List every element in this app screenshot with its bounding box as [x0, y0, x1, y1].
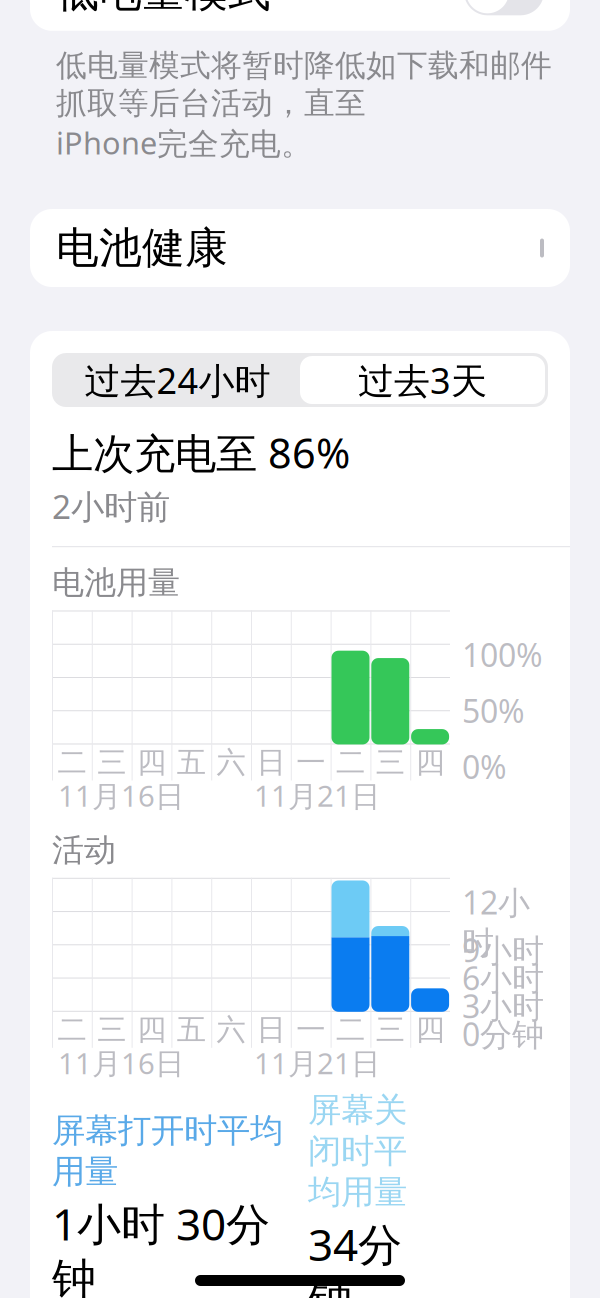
- staticText: 过去3天: [358, 356, 487, 404]
- staticText: 上次充电至 86%: [52, 425, 350, 480]
- staticText: 三: [97, 744, 126, 780]
- button[interactable]: 低电量模式: [30, 0, 570, 31]
- staticText: 四: [137, 1012, 166, 1048]
- staticText: 50%: [462, 689, 525, 732]
- staticText: 一: [296, 1012, 325, 1048]
- staticText: 电池健康: [56, 222, 228, 274]
- staticText: 四: [416, 1012, 445, 1048]
- staticText: 四: [416, 744, 445, 780]
- staticText: 11月21日: [254, 776, 380, 815]
- staticText: 100%: [462, 633, 543, 676]
- staticText: 11月16日: [58, 1043, 184, 1082]
- staticText: 三: [376, 744, 405, 780]
- staticText: 低电量模式将暂时降低如下载和邮件抓取等后台活动，直至 iPhone完全充电。: [56, 47, 552, 163]
- staticText: 过去24小时: [84, 356, 270, 404]
- button[interactable]: 过去3天: [300, 356, 545, 404]
- staticText: 2小时前: [52, 484, 170, 528]
- staticText: 屏幕打开时平均用量: [52, 1110, 283, 1192]
- button[interactable]: 过去24小时: [55, 356, 300, 404]
- staticText: 三: [97, 1012, 126, 1048]
- staticText: 三: [376, 1012, 405, 1048]
- staticText: 9小时: [462, 928, 544, 971]
- staticText: 六: [217, 744, 246, 780]
- staticText: 电池用量: [52, 563, 180, 602]
- staticText: 四: [137, 744, 166, 780]
- staticText: 34分钟: [308, 1215, 402, 1298]
- staticText: 6小时: [462, 956, 544, 999]
- staticText: 日: [256, 744, 285, 780]
- staticText: 五: [177, 744, 206, 780]
- staticText: 二: [336, 1012, 365, 1048]
- staticText: 二: [336, 744, 365, 780]
- staticText: 0分钟: [462, 1012, 544, 1055]
- staticText: 二: [57, 744, 86, 780]
- staticText: 11月16日: [58, 776, 184, 815]
- staticText: 一: [296, 744, 325, 780]
- staticText: 屏幕关闭时平均用量: [308, 1090, 407, 1213]
- staticText: 六: [217, 1012, 246, 1048]
- staticText: 12小时: [462, 881, 530, 963]
- staticText: 活动: [52, 830, 116, 870]
- staticText: 低电量模式: [56, 0, 271, 18]
- staticText: 3小时: [462, 984, 544, 1027]
- staticText: 五: [177, 1012, 206, 1048]
- button[interactable]: 电池健康: [30, 209, 570, 287]
- staticText: 日: [256, 1012, 285, 1048]
- staticText: 11月21日: [254, 1043, 380, 1082]
- staticText: 二: [57, 1012, 86, 1048]
- staticText: 1小时 30分钟: [52, 1194, 270, 1298]
- staticText: 0%: [462, 745, 507, 788]
